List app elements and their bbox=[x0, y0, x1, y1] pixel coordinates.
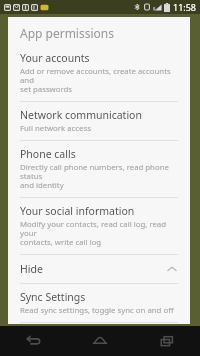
staticText: Hide bbox=[20, 262, 43, 276]
staticText: Your social information bbox=[20, 204, 135, 218]
button[interactable]: Home bbox=[66, 326, 133, 356]
button[interactable]: Back bbox=[0, 326, 66, 356]
button[interactable]: Your social information bbox=[8, 198, 190, 254]
button[interactable]: Phone calls bbox=[8, 141, 190, 197]
staticText: Full network access bbox=[20, 123, 91, 134]
staticText: 11:58 bbox=[173, 1, 197, 13]
button[interactable]: Sync Settings bbox=[8, 284, 190, 322]
button[interactable]: Recent apps bbox=[133, 326, 200, 356]
button[interactable]: Hide bbox=[8, 255, 190, 283]
staticText: Your accounts bbox=[20, 51, 90, 65]
button[interactable]: Network communication bbox=[8, 102, 190, 140]
button[interactable]: Your accounts bbox=[8, 45, 190, 101]
other: Collapse bbox=[166, 263, 178, 275]
staticText: Directly call phone numbers, read phone … bbox=[20, 162, 178, 191]
staticText: Add or remove accounts, create accounts … bbox=[20, 66, 178, 95]
staticText: Network communication bbox=[20, 108, 142, 122]
staticText: Phone calls bbox=[20, 147, 76, 161]
staticText: Sync Settings bbox=[20, 290, 86, 304]
staticText: App permissions bbox=[20, 25, 114, 41]
staticText: Modify your contacts, read call log, rea… bbox=[20, 219, 178, 248]
staticText: Read sync settings, toggle sync on and o… bbox=[20, 305, 174, 316]
